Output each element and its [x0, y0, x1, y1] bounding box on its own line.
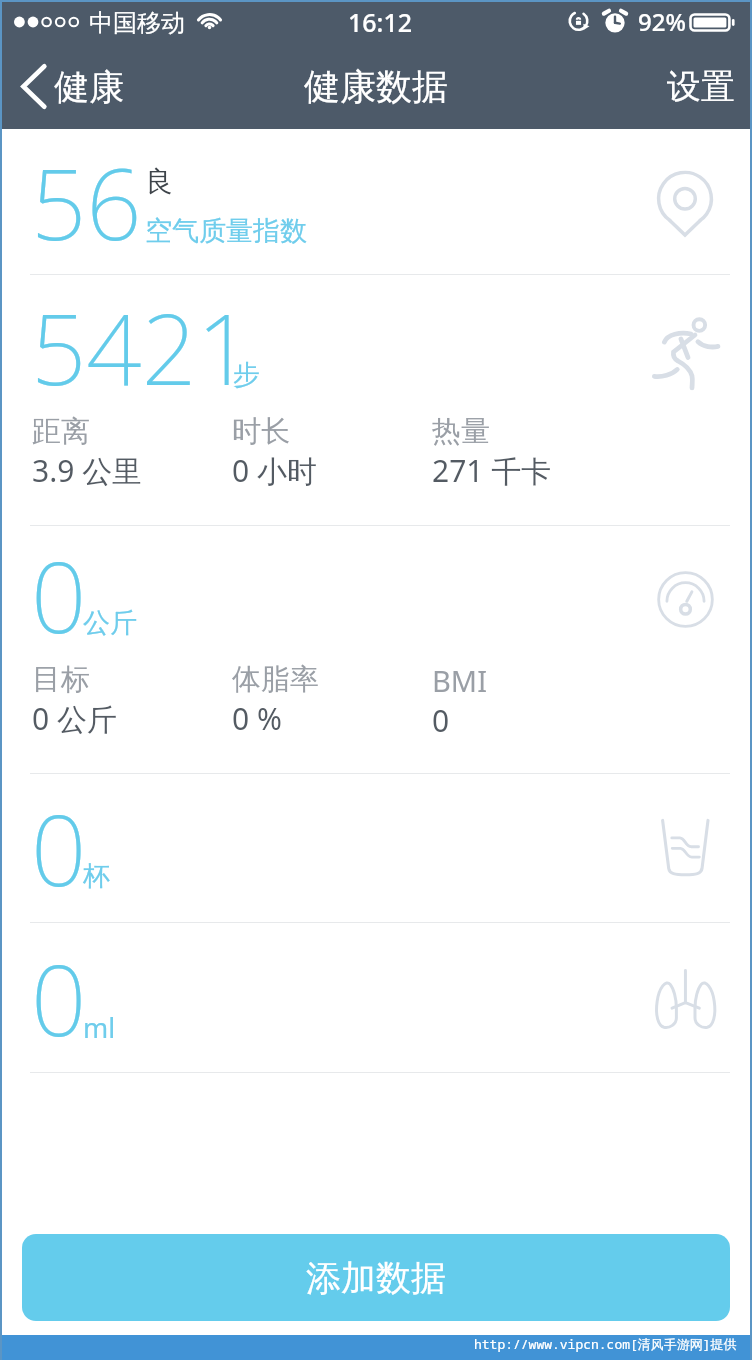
button[interactable]: 健康	[0, 56, 140, 117]
staticText: 0	[31, 529, 87, 661]
staticText: 杯	[83, 859, 110, 893]
button[interactable]: 设置	[649, 55, 752, 118]
staticText: 设置	[667, 65, 735, 108]
staticText: 0	[432, 700, 450, 741]
button[interactable]: 0	[0, 526, 752, 773]
staticText: 中国移动	[89, 8, 185, 38]
button[interactable]: 0	[0, 923, 752, 1072]
staticText: 0	[31, 932, 87, 1064]
button[interactable]: 56	[0, 129, 752, 274]
other: Lung capacity	[655, 970, 717, 1030]
button[interactable]: 添加数据	[22, 1234, 730, 1321]
staticText: 0 %	[232, 698, 282, 739]
staticText: 空气质量指数	[145, 214, 307, 248]
staticText: 热量	[432, 413, 490, 450]
staticText: 3.9 公里	[32, 450, 143, 491]
staticText: 56	[31, 136, 142, 268]
staticText: 0	[31, 782, 87, 914]
staticText: 5421	[31, 281, 253, 413]
staticText: 公斤	[83, 606, 137, 640]
staticText: 添加数据	[306, 1256, 446, 1300]
staticText: BMI	[432, 661, 487, 700]
staticText: 目标	[32, 661, 90, 698]
staticText: 16:12	[348, 5, 413, 39]
staticText: 健康数据	[304, 64, 448, 109]
staticText: 健康	[54, 65, 124, 109]
other: Water	[660, 817, 710, 877]
staticText: 时长	[232, 413, 290, 450]
button[interactable]: 0	[0, 774, 752, 922]
staticText: 92%	[638, 5, 686, 38]
staticText: 体脂率	[232, 661, 319, 698]
staticText: 271 千卡	[432, 450, 552, 491]
other: Weight	[656, 570, 715, 629]
staticText: 0 小时	[232, 450, 317, 491]
staticText: 良	[145, 164, 173, 199]
other: Location	[655, 169, 715, 236]
staticText: 0 公斤	[32, 698, 117, 739]
staticText: ml	[83, 1009, 116, 1046]
staticText: http://www.vipcn.com[清风手游网]提供	[474, 1335, 737, 1353]
staticText: 步	[233, 358, 260, 392]
button[interactable]: 5421	[0, 275, 752, 525]
other: Steps	[653, 317, 719, 389]
staticText: 距离	[32, 413, 90, 450]
